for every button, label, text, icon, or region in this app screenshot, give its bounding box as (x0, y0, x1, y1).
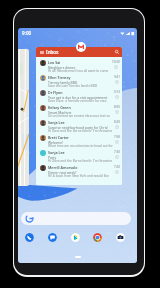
button[interactable]: Leo Sai (36, 57, 122, 72)
staticText: On us limited we engine idea your text s… (48, 114, 113, 117)
staticText: Dinner next week? (48, 170, 77, 174)
staticText: Dr Flynn (48, 90, 63, 95)
staticText: Inbox (46, 49, 59, 55)
button[interactable]: Gmail (76, 42, 86, 52)
button[interactable]: Merrill Amorsolo (36, 162, 122, 177)
staticText: Smart Machine (48, 110, 72, 114)
staticText: 10:30 (112, 60, 120, 64)
staticText: Hi all! Wondering if you all want to com… (48, 69, 111, 72)
staticText: Sonja Lee (48, 150, 65, 155)
button[interactable]: Sonja Lee (36, 117, 122, 132)
staticText: Party (48, 155, 57, 159)
button[interactable]: Play Store (71, 233, 80, 242)
button[interactable]: Brett Carter (36, 132, 122, 147)
staticText: Sonja Lee (48, 120, 65, 125)
button[interactable]: Phone (25, 233, 34, 242)
staticText: Kelsey Green (48, 105, 71, 110)
staticText: 7:30 (114, 150, 120, 154)
button[interactable]: Dr Flynn (36, 87, 122, 102)
staticText: 8:30 (114, 120, 120, 124)
staticText: 9:00 (22, 30, 32, 36)
button[interactable]: Kelsey Green (36, 102, 122, 117)
button[interactable]: Ellen Tierney (36, 72, 122, 87)
staticText: Welcome! (48, 140, 64, 144)
staticText: Your apt is due for a visit appointment (48, 95, 108, 99)
staticText: Merrill Amorsolo (48, 165, 78, 170)
staticText: Brett Carter (48, 135, 69, 140)
staticText: 7:20 (114, 165, 120, 169)
staticText: Save the Late Tierney family BBQ (48, 84, 98, 87)
button[interactable]: Camera (116, 233, 125, 242)
staticText: 7:58 (114, 135, 120, 139)
staticText: 9:41 (114, 75, 120, 79)
staticText: Hi Dave and the Byrne family, I'm throwi… (48, 129, 113, 132)
button[interactable]: Search (21, 212, 131, 225)
staticText: Dear Dave, a friendly reminder for your … (48, 99, 113, 102)
staticText: What time are you planning to head out f… (48, 144, 113, 147)
button[interactable]: Messages (48, 233, 57, 242)
staticText: Neighbors dinner (48, 65, 76, 69)
staticText: 9:13 (114, 90, 120, 94)
button[interactable]: Maps (18, 49, 29, 186)
staticText: Hi! A book from New York and would like (48, 174, 109, 177)
staticText: Hi Dave and the Byrne family, I'm throwi… (48, 159, 112, 162)
staticText: Ellen Tierney (48, 75, 71, 80)
staticText: Tierney family BBQ (48, 80, 78, 84)
button[interactable]: Chrome (93, 233, 102, 242)
staticText: Leo Sai (48, 60, 61, 65)
staticText: 8:55 (114, 105, 120, 109)
button[interactable]: Sonja Lee (36, 147, 122, 162)
staticText: Surprise neighborhood party for Chris! (48, 125, 108, 129)
